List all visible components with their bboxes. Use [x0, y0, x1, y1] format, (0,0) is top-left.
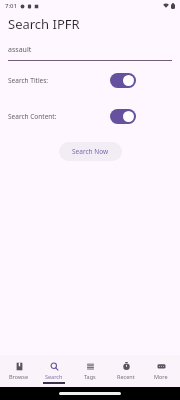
staticText: More: [154, 373, 168, 380]
staticText: Tags: [84, 373, 96, 380]
button[interactable]: Search: [37, 355, 71, 387]
button[interactable]: Recent: [109, 355, 143, 387]
staticText: Search IPFR: [8, 15, 80, 33]
button[interactable]: Browse: [2, 355, 36, 387]
staticText: Search Now: [72, 147, 109, 156]
staticText: assault: [8, 45, 32, 55]
staticText: Browse: [9, 373, 29, 380]
button[interactable]: Search Titles:: [0, 71, 180, 90]
button[interactable]: Search Content:: [0, 107, 180, 126]
staticText: Search: [45, 373, 63, 380]
button[interactable]: Toggle: [110, 109, 136, 124]
staticText: Search Titles:: [8, 76, 49, 85]
button[interactable]: Tags: [73, 355, 107, 387]
staticText: Recent: [117, 373, 135, 380]
staticText: 7:01: [5, 2, 17, 10]
button[interactable]: Search Now: [59, 142, 122, 161]
button[interactable]: More: [144, 355, 178, 387]
button[interactable]: Toggle: [110, 73, 136, 88]
staticText: Search Content:: [8, 112, 57, 121]
